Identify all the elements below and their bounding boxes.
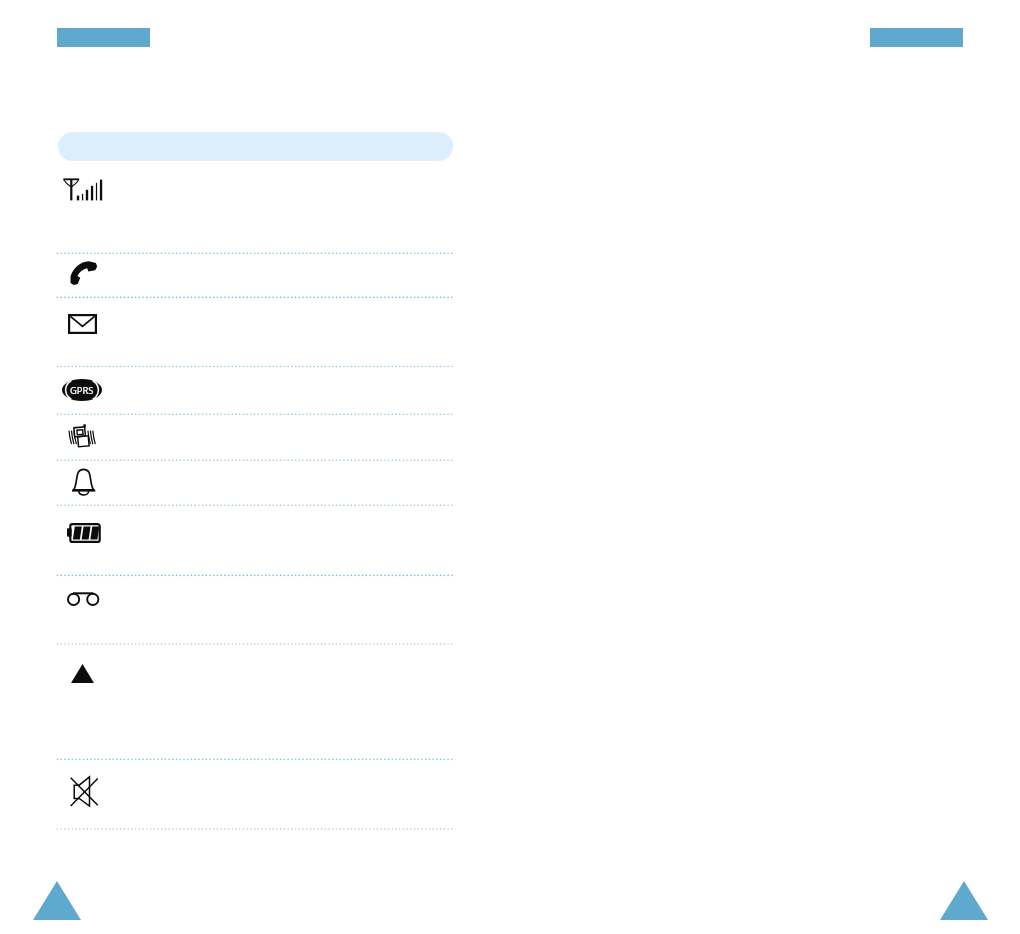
button[interactable]: Icons section header	[58, 132, 453, 161]
button[interactable]: Signal strength	[57, 162, 453, 253]
button[interactable]: GPRS network	[57, 366, 453, 414]
button[interactable]: Silent mode	[57, 759, 453, 829]
button[interactable]: Voicemail message	[57, 575, 453, 644]
button[interactable]: Battery level	[57, 505, 453, 575]
button[interactable]: Previous page	[33, 881, 81, 920]
button[interactable]: Ringer alert	[57, 460, 453, 505]
button[interactable]: Call in progress	[57, 253, 453, 297]
button[interactable]: Roaming	[57, 644, 453, 759]
button[interactable]: Next page	[940, 881, 988, 920]
button[interactable]: New text message	[57, 297, 453, 366]
button[interactable]: Vibrate mode	[57, 414, 453, 460]
staticText: GPRS	[70, 384, 94, 397]
